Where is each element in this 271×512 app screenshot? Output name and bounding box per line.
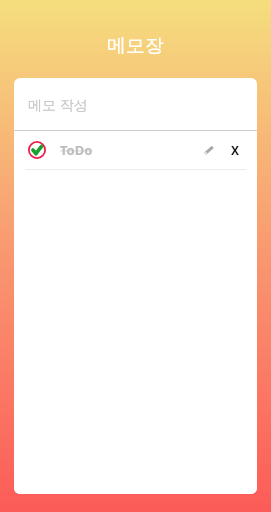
- staticText: 메모 작성: [28, 95, 88, 114]
- staticText: 메모장: [107, 34, 164, 58]
- staticText: ToDo: [60, 141, 93, 159]
- button[interactable]: Delete: [225, 140, 245, 160]
- button[interactable]: Toggle done: [27, 140, 47, 160]
- button[interactable]: 메모 작성: [14, 78, 257, 130]
- staticText: X: [231, 142, 240, 158]
- button[interactable]: Toggle done: [14, 131, 257, 169]
- button[interactable]: Edit: [199, 140, 219, 160]
